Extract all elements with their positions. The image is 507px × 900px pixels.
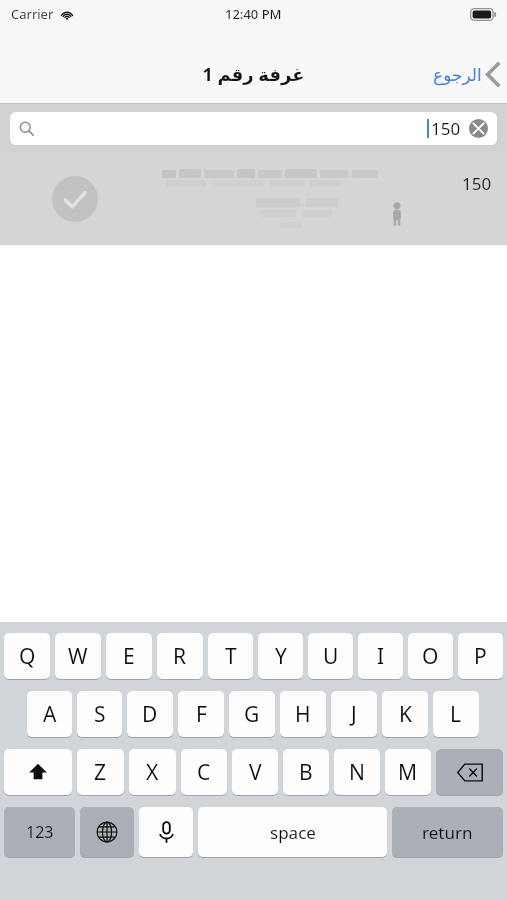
staticText: N [349, 758, 365, 787]
staticText: H [295, 700, 311, 729]
button[interactable]: O [408, 633, 453, 679]
button[interactable]: N [334, 749, 380, 795]
staticText: Z [94, 758, 107, 787]
button[interactable]: Y [258, 633, 303, 679]
staticText: K [399, 700, 412, 729]
staticText: space [270, 821, 316, 844]
button[interactable]: M [385, 749, 431, 795]
button[interactable]: D [127, 691, 173, 737]
button[interactable]: H [280, 691, 326, 737]
button[interactable]: C [181, 749, 227, 795]
staticText: S [94, 700, 106, 729]
staticText: L [450, 700, 462, 729]
staticText: 12:40 PM [225, 5, 282, 23]
button[interactable]: Backspace [436, 749, 503, 795]
staticText: 150 [462, 172, 492, 195]
button[interactable]: الرجوع [425, 58, 507, 91]
button[interactable]: V [232, 749, 278, 795]
staticText: G [244, 700, 260, 729]
button[interactable]: Z [77, 749, 124, 795]
button[interactable]: B [283, 749, 329, 795]
button[interactable]: 150 [0, 152, 507, 245]
button[interactable]: J [331, 691, 377, 737]
button[interactable]: P [458, 633, 503, 679]
staticText: R [173, 642, 187, 671]
button[interactable]: R [157, 633, 203, 679]
staticText: O [422, 642, 439, 671]
staticText: T [225, 642, 237, 671]
staticText: B [299, 758, 313, 787]
staticText: 150 [431, 117, 461, 140]
staticText: Q [19, 642, 36, 671]
staticText: Y [275, 642, 287, 671]
staticText: D [142, 700, 158, 729]
staticText: Carrier [11, 5, 54, 23]
button[interactable]: U [308, 633, 353, 679]
button[interactable]: K [382, 691, 428, 737]
button[interactable]: Q [4, 633, 50, 679]
button[interactable]: G [229, 691, 275, 737]
staticText: F [196, 700, 207, 729]
button[interactable]: Shift [4, 749, 72, 795]
button[interactable]: 123 [4, 807, 75, 857]
staticText: 123 [26, 821, 54, 843]
button[interactable]: E [106, 633, 152, 679]
button[interactable]: 150 [10, 112, 497, 145]
button[interactable]: X [129, 749, 176, 795]
button[interactable]: T [208, 633, 253, 679]
button[interactable]: space [198, 807, 387, 857]
button[interactable]: L [433, 691, 479, 737]
staticText: I [377, 642, 385, 671]
button[interactable]: F [178, 691, 224, 737]
button[interactable]: return [392, 807, 503, 857]
staticText: A [43, 700, 57, 729]
staticText: X [146, 758, 159, 787]
staticText: غرفة رقم 1 [202, 62, 305, 87]
button[interactable]: S [77, 691, 122, 737]
button[interactable]: W [55, 633, 101, 679]
staticText: C [197, 758, 211, 787]
staticText: P [474, 642, 487, 671]
staticText: J [351, 700, 357, 729]
staticText: V [249, 758, 262, 787]
staticText: return [422, 821, 473, 844]
button[interactable]: Clear text [469, 119, 488, 138]
staticText: M [398, 758, 418, 787]
button[interactable]: Switch keyboard [80, 807, 134, 857]
button[interactable]: A [27, 691, 72, 737]
staticText: U [323, 642, 339, 671]
staticText: E [123, 642, 135, 671]
button[interactable]: I [358, 633, 403, 679]
staticText: الرجوع [433, 65, 482, 85]
button[interactable]: Dictate [139, 807, 193, 857]
staticText: W [68, 642, 88, 671]
